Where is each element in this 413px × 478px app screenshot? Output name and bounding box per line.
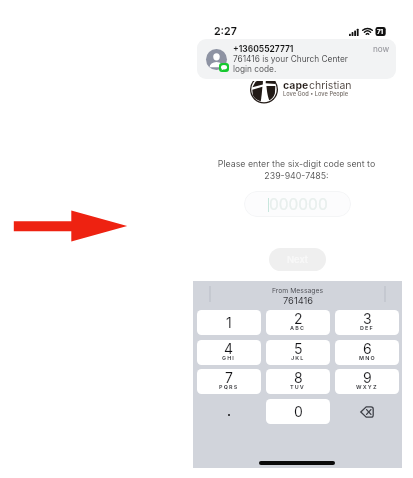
button[interactable]: 8 [266, 369, 330, 394]
staticText: ABC [290, 325, 306, 332]
staticText: DEF [360, 325, 374, 332]
staticText: MNO [359, 355, 376, 362]
staticText: TUV [290, 384, 306, 391]
staticText: 4 [224, 340, 234, 357]
staticText: 7 [225, 369, 233, 386]
staticText: 0 [294, 403, 303, 420]
staticText: 000000 [269, 195, 328, 214]
button[interactable]: 9 [335, 369, 399, 394]
button[interactable]: 2 [266, 310, 330, 335]
staticText: 71 [377, 28, 384, 35]
staticText: 6 [363, 340, 372, 357]
staticText: 3 [363, 310, 372, 327]
staticText: WXYZ [356, 384, 378, 391]
button[interactable]: From Messages [193, 281, 402, 309]
button[interactable]: 4 [197, 340, 261, 365]
staticText: +13605527771 [233, 44, 294, 54]
staticText: christian [309, 79, 352, 92]
staticText: Please enter the six-digit code sent to … [197, 158, 396, 181]
staticText: login code. [233, 64, 277, 74]
staticText: 9 [363, 369, 372, 386]
staticText: Love God • Love People [283, 90, 349, 97]
staticText: cape [283, 79, 309, 92]
staticText: From Messages [272, 286, 324, 294]
button[interactable]: 7 [197, 369, 261, 394]
button[interactable]: +13605527771 [197, 39, 396, 79]
staticText: JKL [291, 355, 305, 362]
staticText: PQRS [219, 384, 239, 391]
staticText: 8 [294, 369, 303, 386]
staticText: Next [287, 254, 309, 265]
button[interactable]: 0 [266, 399, 330, 424]
button[interactable]: 1 [197, 310, 261, 335]
staticText: 761416 is your Church Center [233, 54, 348, 64]
button[interactable]: 000000 [244, 191, 351, 217]
button[interactable]: Dot [197, 399, 261, 424]
button[interactable]: Next [269, 248, 326, 271]
button[interactable]: Backspace [335, 399, 399, 424]
button[interactable]: 5 [266, 340, 330, 365]
staticText: GHI [222, 355, 236, 362]
staticText: now [373, 44, 390, 54]
staticText: 2 [294, 310, 303, 327]
staticText: 5 [294, 340, 303, 357]
button[interactable]: 3 [335, 310, 399, 335]
staticText: 2:27 [214, 25, 237, 38]
button[interactable]: 6 [335, 340, 399, 365]
staticText: 761416 [283, 295, 314, 306]
staticText: 1 [226, 314, 232, 331]
